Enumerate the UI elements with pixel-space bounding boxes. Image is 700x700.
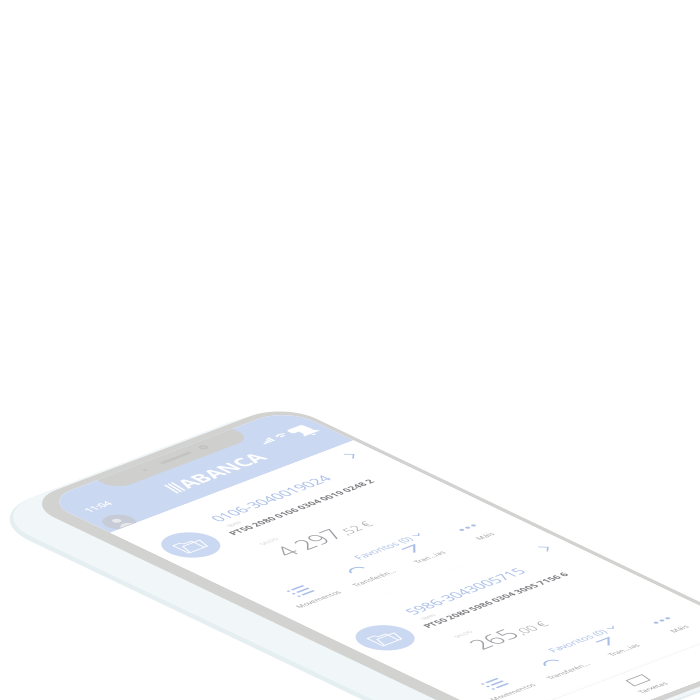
staticText: Favoritos (0) (165, 639, 248, 658)
button[interactable]: Máis (273, 659, 359, 700)
staticText: 265 (108, 562, 168, 608)
staticText: PT50 2080 5986 0304 3005 7156 6 (101, 504, 319, 522)
staticText: SALDO (108, 549, 133, 560)
staticText: 5986-3043005715 (112, 460, 287, 488)
button[interactable]: Favoritos (0) (165, 639, 265, 658)
staticText: ,00 € (170, 579, 212, 604)
button[interactable]: 5986-3043005715 (0, 424, 375, 624)
